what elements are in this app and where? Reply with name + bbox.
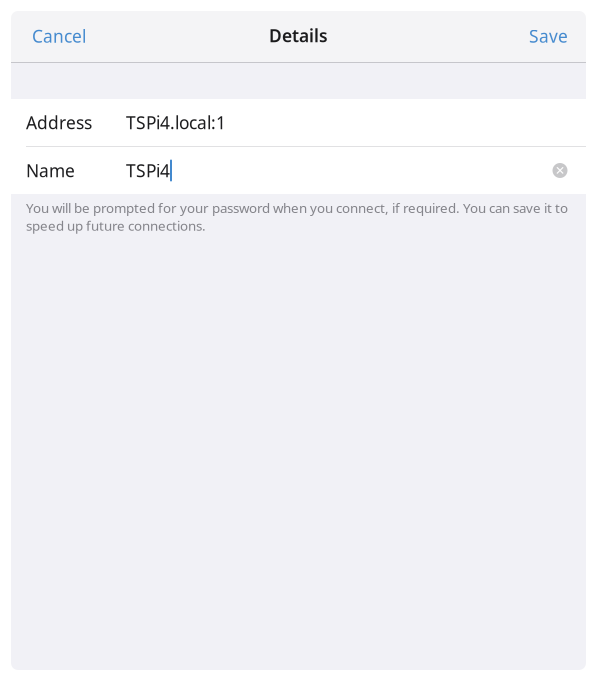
- staticText: Address: [26, 111, 92, 134]
- staticText: Save: [529, 24, 568, 47]
- button[interactable]: Cancel: [11, 10, 107, 63]
- staticText: Cancel: [32, 24, 86, 47]
- staticText: Name: [26, 159, 75, 182]
- staticText: ✕: [555, 164, 565, 177]
- button[interactable]: Clear text: [540, 148, 580, 192]
- button[interactable]: Save: [508, 10, 586, 63]
- staticText: TSPi4: [126, 159, 170, 182]
- staticText: Details: [269, 24, 328, 47]
- staticText: You will be prompted for your password w…: [26, 199, 568, 234]
- button[interactable]: Name: [11, 147, 586, 194]
- button[interactable]: Address: [11, 99, 586, 146]
- staticText: TSPi4.local:1: [126, 111, 226, 134]
